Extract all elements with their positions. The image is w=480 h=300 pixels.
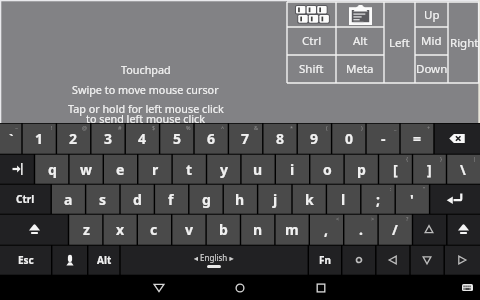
button[interactable]: Shift — [447, 214, 480, 245]
button[interactable]: Meta — [336, 55, 384, 83]
button[interactable]: Alt — [336, 27, 384, 55]
button[interactable]: Change keyboard — [453, 275, 480, 300]
button[interactable]: p — [344, 154, 378, 184]
button[interactable]: Home — [226, 275, 254, 300]
button[interactable]: Right — [448, 2, 480, 83]
button[interactable]: 2 — [56, 123, 90, 154]
button[interactable]: Back — [145, 275, 173, 300]
button[interactable]: s — [86, 184, 120, 214]
staticText: o — [323, 160, 332, 179]
button[interactable]: Left — [384, 2, 415, 83]
button[interactable]: t — [172, 154, 206, 184]
button[interactable]: Down — [410, 245, 444, 275]
staticText: Meta — [346, 61, 374, 77]
button[interactable]: m — [275, 214, 309, 245]
button[interactable]: Show keyboard — [287, 2, 336, 27]
button[interactable]: Shift — [0, 214, 69, 245]
staticText: n — [253, 220, 263, 239]
button[interactable]: f — [154, 184, 188, 214]
staticText: b — [219, 220, 228, 239]
button[interactable]: 3 — [91, 123, 125, 154]
button[interactable]: Mid — [415, 27, 448, 55]
button[interactable]: v — [172, 214, 206, 245]
staticText: h — [235, 190, 245, 209]
button[interactable]: [ — [378, 154, 412, 184]
button[interactable]: Ctrl — [0, 184, 51, 214]
button[interactable]: Right — [444, 245, 480, 275]
button[interactable]: . — [344, 214, 378, 245]
staticText: 9 — [310, 129, 319, 148]
staticText: a — [64, 190, 73, 209]
button[interactable]: Page up — [412, 214, 446, 245]
button[interactable]: Voice input — [52, 245, 88, 275]
button[interactable]: Fn — [308, 245, 341, 275]
button[interactable]: Options — [342, 245, 376, 275]
button[interactable]: Tab — [0, 154, 35, 184]
staticText: ' — [410, 190, 414, 209]
button[interactable]: \ — [446, 154, 480, 184]
button[interactable]: g — [189, 184, 223, 214]
staticText: Alt — [97, 253, 112, 267]
button[interactable]: e — [103, 154, 137, 184]
button[interactable]: 9 — [297, 123, 331, 154]
button[interactable]: 8 — [263, 123, 297, 154]
button[interactable]: Space — [120, 245, 308, 275]
button[interactable]: x — [103, 214, 137, 245]
button[interactable]: Shift — [287, 55, 336, 83]
button[interactable]: Down — [415, 55, 448, 83]
staticText: c — [150, 220, 158, 239]
staticText: # — [118, 124, 122, 131]
button[interactable]: Left — [376, 245, 410, 275]
button[interactable]: w — [69, 154, 103, 184]
button[interactable]: o — [310, 154, 344, 184]
staticText: Ctrl — [302, 33, 322, 49]
button[interactable]: a — [51, 184, 85, 214]
button[interactable]: q — [35, 154, 69, 184]
staticText: g — [202, 190, 211, 209]
button[interactable]: j — [258, 184, 292, 214]
button[interactable]: Touchpad — [0, 0, 480, 123]
staticText: w — [80, 160, 92, 179]
staticText: . — [359, 220, 363, 239]
button[interactable]: y — [207, 154, 241, 184]
button[interactable]: ] — [412, 154, 446, 184]
button[interactable]: Alt — [88, 245, 120, 275]
button[interactable]: Enter — [430, 184, 480, 214]
staticText: [ — [393, 160, 398, 179]
button[interactable]: Ctrl — [287, 27, 336, 55]
staticText: ◂ English ▸ — [194, 252, 234, 263]
staticText: Alt — [353, 33, 368, 49]
button[interactable]: z — [69, 214, 103, 245]
button[interactable]: c — [137, 214, 171, 245]
button[interactable]: b — [206, 214, 240, 245]
button[interactable]: 6 — [194, 123, 228, 154]
button[interactable]: Clipboard — [336, 2, 384, 27]
button[interactable]: h — [223, 184, 257, 214]
button[interactable]: ' — [395, 184, 429, 214]
button[interactable]: Recent apps — [307, 275, 335, 300]
button[interactable]: u — [241, 154, 275, 184]
button[interactable]: Backspace — [434, 123, 480, 154]
staticText: 0 — [345, 129, 354, 148]
button[interactable]: , — [309, 214, 343, 245]
button[interactable]: 5 — [160, 123, 194, 154]
button[interactable]: i — [275, 154, 309, 184]
button[interactable]: ; — [361, 184, 395, 214]
button[interactable]: 7 — [228, 123, 262, 154]
button[interactable]: Up — [415, 2, 448, 27]
button[interactable]: r — [138, 154, 172, 184]
staticText: % — [186, 124, 191, 131]
button[interactable]: n — [241, 214, 275, 245]
button[interactable]: - — [366, 123, 400, 154]
staticText: Touchpad — [121, 62, 171, 77]
button[interactable]: = — [400, 123, 434, 154]
button[interactable]: Esc — [0, 245, 52, 275]
button[interactable]: d — [120, 184, 154, 214]
button[interactable]: 4 — [125, 123, 159, 154]
button[interactable]: 0 — [332, 123, 366, 154]
button[interactable]: ` — [0, 123, 22, 154]
button[interactable]: l — [326, 184, 360, 214]
button[interactable]: / — [378, 214, 412, 245]
button[interactable]: 1 — [22, 123, 56, 154]
button[interactable]: k — [292, 184, 326, 214]
